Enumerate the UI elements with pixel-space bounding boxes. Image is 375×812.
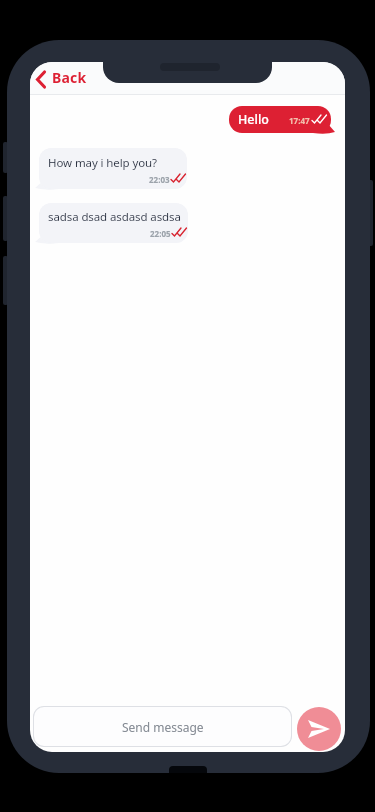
button[interactable]: Send message [33, 706, 292, 747]
staticText: sadsa dsad asdasd asdsa [48, 209, 181, 225]
button[interactable]: How may i help you? [39, 148, 187, 189]
staticText: 17:47 [289, 115, 310, 126]
button[interactable] [297, 707, 341, 751]
staticText: 22:03 [149, 174, 170, 185]
staticText: How may i help you? [48, 155, 157, 171]
button[interactable]: Back [32, 64, 94, 92]
button[interactable]: sadsa dsad asdasd asdsa [39, 203, 188, 243]
button[interactable]: Hello [229, 106, 331, 133]
staticText: Back [52, 68, 87, 87]
staticText: Send message [122, 719, 204, 735]
staticText: 22:05 [150, 228, 171, 239]
staticText: Hello [238, 111, 269, 128]
